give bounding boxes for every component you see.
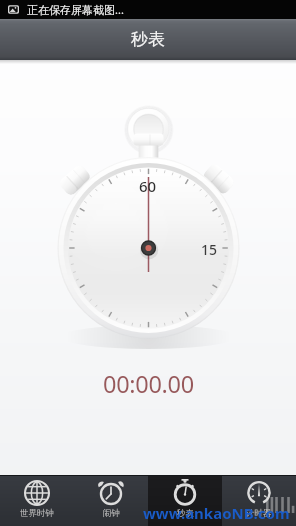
staticText: 世界时钟 <box>20 508 54 519</box>
staticText: 闹钟 <box>103 508 120 519</box>
staticText: 计时器 <box>246 508 272 519</box>
staticText: 正在保存屏幕截图... <box>27 2 124 17</box>
staticText: 15 <box>201 240 218 259</box>
staticText: 秒表 <box>131 29 165 50</box>
button[interactable]: 闹钟 <box>74 475 148 526</box>
staticText: 秒表 <box>177 508 194 519</box>
button[interactable]: 世界时钟 <box>0 475 74 526</box>
staticText: www.ankaoNB.com <box>143 503 290 523</box>
button[interactable]: 秒表 <box>148 475 222 526</box>
button[interactable]: 计时器 <box>222 475 296 526</box>
other: Screenshot saved <box>8 4 19 15</box>
staticText: 00:00.00 <box>103 368 194 398</box>
staticText: 60 <box>139 176 157 196</box>
